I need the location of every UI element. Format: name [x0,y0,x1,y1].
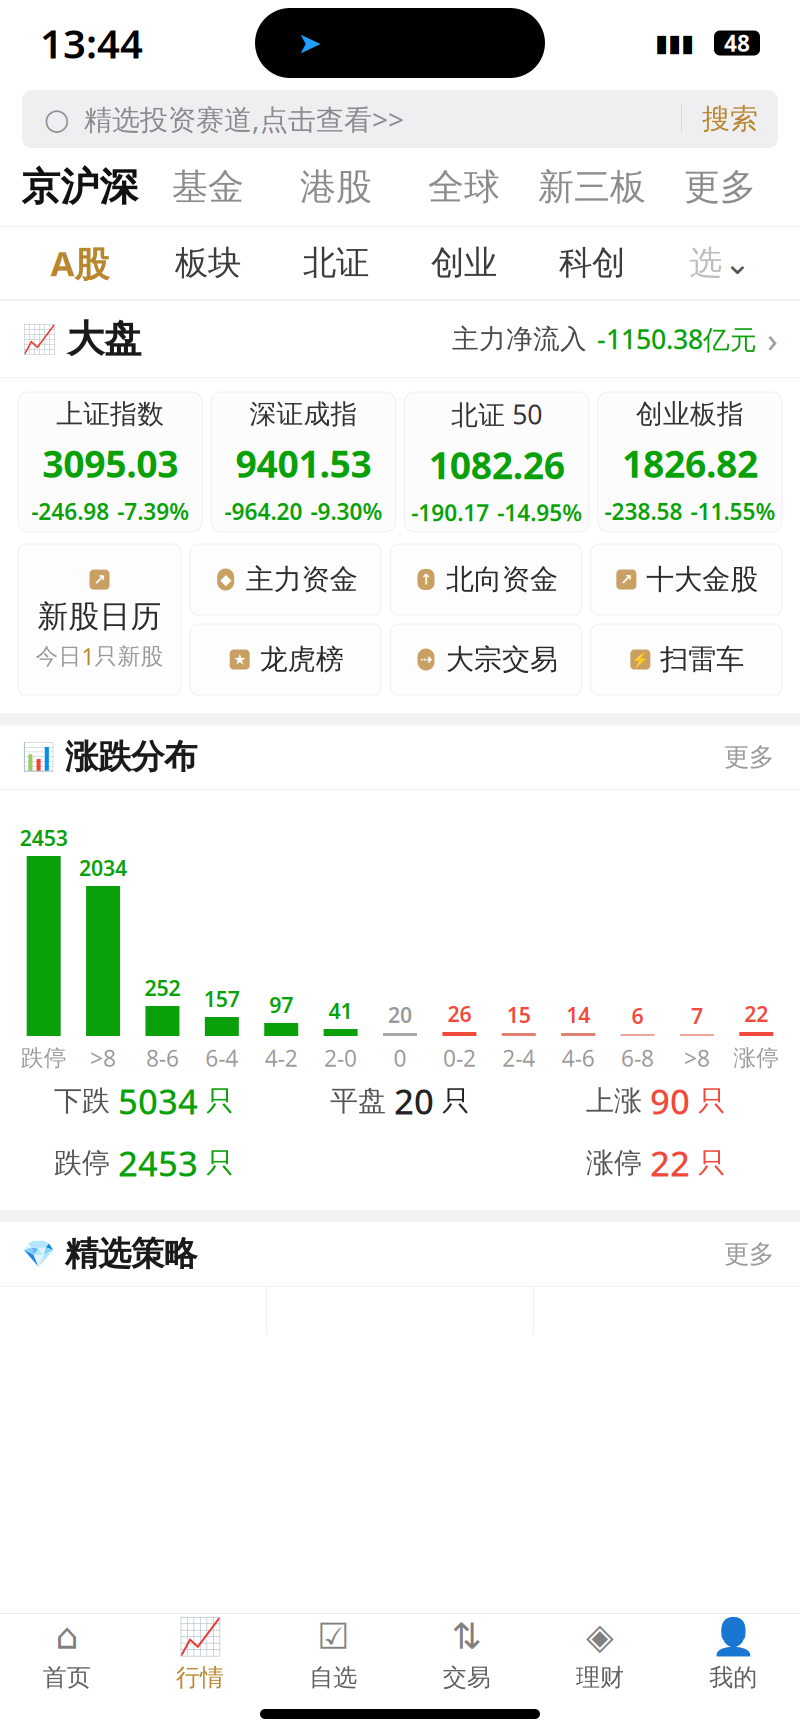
staticText: 更多 [684,165,756,209]
staticText: 跌停 [21,1044,67,1072]
button[interactable]: ○ [22,90,778,148]
staticText: 精选策略 [65,1233,197,1274]
button[interactable]: 北证 50 [404,392,589,532]
staticText: ↑ [420,571,432,588]
button[interactable]: 👤 [667,1614,800,1694]
button[interactable]: 创业 [400,242,528,283]
button[interactable]: 创业板指 [598,392,782,532]
button[interactable]: 港股 [272,165,400,209]
staticText: 0-2 [443,1043,476,1073]
staticText: 📈 [177,1616,222,1657]
button[interactable]: 更多 [720,1232,778,1275]
staticText: 13:44 [40,16,143,69]
staticText: 只 [698,1084,726,1118]
staticText: 4-6 [562,1043,595,1073]
staticText: -238.58 [604,496,682,526]
staticText: 97 [269,991,293,1019]
staticText: 理财 [576,1663,624,1692]
staticText: 48 [724,28,750,58]
button[interactable]: 更多 [720,735,778,778]
button[interactable]: 选 [656,242,784,283]
button[interactable]: ◈ [533,1614,667,1694]
staticText: ⇢ [420,651,432,668]
button[interactable]: 更多 [656,165,784,209]
button[interactable]: ⇅ [400,1614,533,1694]
button[interactable]: 科创 [528,242,656,283]
staticText: ◈ [586,1616,614,1657]
button[interactable]: ⌂ [0,1614,133,1694]
staticText: 京沪深 [21,163,138,211]
staticText: -7.39% [117,496,189,526]
button[interactable]: 深证成指 [211,392,395,532]
staticText: 涨停 [586,1146,642,1180]
staticText: 5034 [118,1078,198,1124]
staticText: >8 [684,1043,710,1073]
staticText: 9401.53 [235,438,371,488]
staticText: 2-4 [502,1043,535,1073]
staticText: 只 [206,1084,234,1118]
staticText: 今日 [35,642,81,670]
staticText: -1150.38亿元 [597,321,757,357]
button[interactable]: ↗ [18,544,181,695]
button[interactable]: 北证 [272,242,400,283]
staticText: >8 [90,1043,116,1073]
staticText: 自选 [309,1663,357,1692]
staticText: 👤 [711,1616,756,1657]
staticText: ⚡ [631,651,649,668]
staticText: 科创 [559,242,625,283]
button[interactable]: ⇢ [390,624,582,695]
staticText: 📊 [22,742,55,772]
staticText: 6-4 [205,1043,238,1073]
button[interactable]: ⚡ [591,624,782,695]
button[interactable]: ↑ [390,544,582,615]
staticText: 十大金股 [646,562,758,597]
button[interactable]: ◆ [190,544,381,615]
staticText: 只 [442,1084,470,1118]
button[interactable]: ☑ [267,1614,400,1694]
button[interactable]: ↗ [591,544,782,615]
button[interactable]: 新三板 [528,165,656,209]
button[interactable]: 基金 [144,165,272,209]
staticText: ↗ [93,571,105,588]
staticText: › [767,316,778,362]
staticText: 只 [698,1146,726,1180]
staticText: 上证指数 [56,398,164,431]
staticText: 行情 [176,1663,224,1692]
staticText: 北证 [303,242,369,283]
staticText: 我的 [709,1663,757,1692]
staticText: 选 [689,242,722,283]
staticText: 基金 [172,165,244,209]
staticText: -11.55% [690,496,775,526]
button[interactable]: 📈 [0,301,800,377]
staticText: ★ [233,651,246,668]
staticText: 20 [388,1001,412,1029]
staticText: 主力资金 [246,562,358,597]
staticText: 2-0 [324,1043,357,1073]
staticText: 北证 50 [451,396,542,432]
staticText: ◆ [220,571,231,588]
button[interactable]: 📈 [133,1614,267,1694]
staticText: 北向资金 [446,562,558,597]
staticText: 跌停 [54,1146,110,1180]
staticText: 2453 [20,824,68,852]
staticText: -9.30% [310,496,382,526]
staticText: 扫雷车 [660,642,744,677]
staticText: -246.98 [31,496,109,526]
staticText: 6 [631,1002,643,1030]
staticText: 6-8 [621,1043,654,1073]
button[interactable]: 上证指数 [18,392,202,532]
staticText: 涨停 [733,1044,779,1072]
staticText: 板块 [175,242,241,283]
staticText: 26 [447,1000,471,1028]
staticText: 创业 [431,242,497,283]
staticText: 252 [144,974,180,1002]
button[interactable]: ★ [190,624,381,695]
staticText: 157 [204,985,240,1013]
staticText: 下跌 [54,1084,110,1118]
button[interactable]: 全球 [400,165,528,209]
staticText: A股 [50,240,109,286]
button[interactable]: 板块 [144,242,272,283]
staticText: 20 [394,1078,434,1124]
staticText: 上涨 [586,1084,642,1118]
staticText: ☑ [317,1616,349,1657]
